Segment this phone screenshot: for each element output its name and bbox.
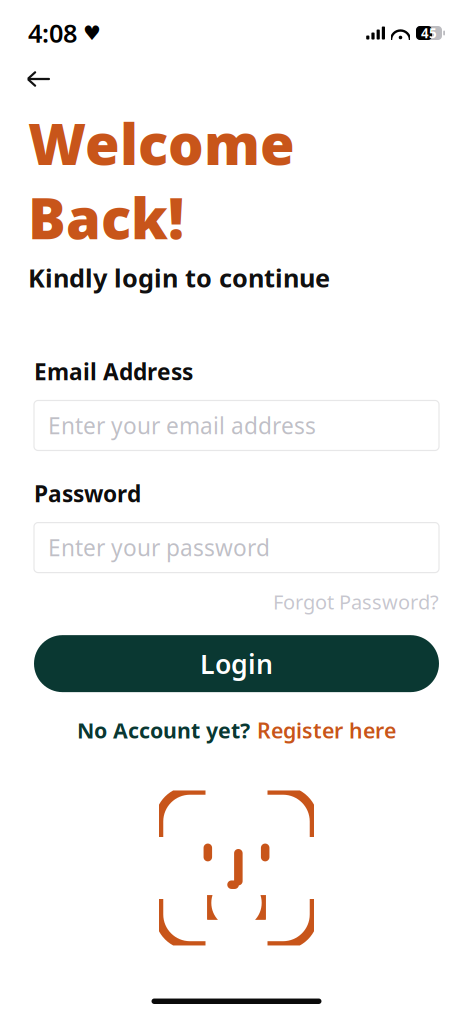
staticText: Enter your password (48, 532, 270, 563)
staticText: Welcome Back! (28, 106, 295, 255)
staticText: Email Address (34, 356, 193, 386)
button[interactable]: Back (20, 60, 58, 98)
staticText: Login (200, 646, 273, 681)
staticText: No Account yet? (77, 716, 250, 744)
staticText: Forgot Password? (273, 589, 439, 615)
staticText: Enter your email address (48, 410, 316, 440)
staticText: ♥ (83, 22, 101, 44)
staticText: 45 (421, 24, 437, 42)
staticText: Password (34, 478, 141, 509)
button[interactable]: Login (34, 635, 439, 692)
button[interactable]: Enter your password (34, 523, 439, 573)
staticText: Kindly login to continue (28, 261, 330, 294)
staticText: 4:08 (28, 16, 77, 50)
button[interactable]: No Account yet? (34, 710, 439, 750)
button[interactable]: Enter your email address (34, 400, 439, 450)
button[interactable]: Forgot Password? (273, 585, 439, 619)
staticText: Register here (257, 716, 396, 744)
button[interactable]: Sign in with Face ID (147, 778, 326, 957)
